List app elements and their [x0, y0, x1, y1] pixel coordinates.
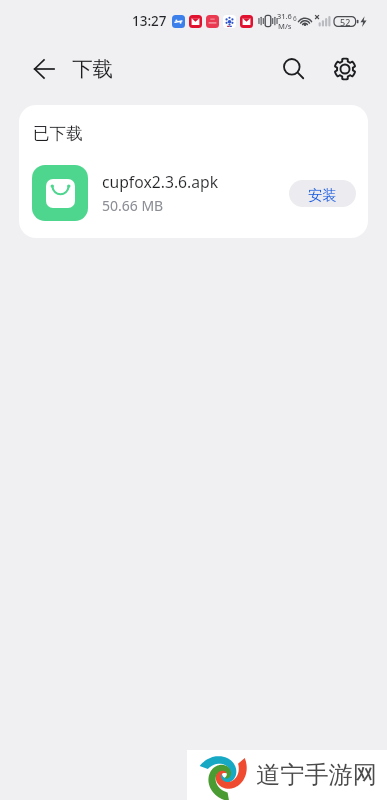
button[interactable]: cupfox2.3.6.apk — [19, 162, 368, 224]
staticText: 52 — [340, 16, 351, 28]
staticText: 道宁手游网 — [256, 760, 377, 790]
staticText: 50.66 MB — [102, 196, 164, 215]
staticText: 31.6 — [277, 11, 292, 21]
staticText: M/s — [278, 21, 292, 31]
staticText: 安装 — [308, 186, 337, 204]
staticText: cupfox2.3.6.apk — [102, 171, 219, 192]
button[interactable]: Search — [274, 49, 314, 89]
button[interactable]: Settings — [325, 49, 365, 89]
staticText: 13:27 — [132, 12, 167, 30]
button[interactable]: 安装 — [289, 180, 356, 207]
staticText: 已下载 — [33, 123, 83, 144]
button[interactable]: Back — [29, 54, 59, 84]
staticText: 6 — [293, 14, 297, 23]
staticText: 下载 — [72, 56, 113, 82]
